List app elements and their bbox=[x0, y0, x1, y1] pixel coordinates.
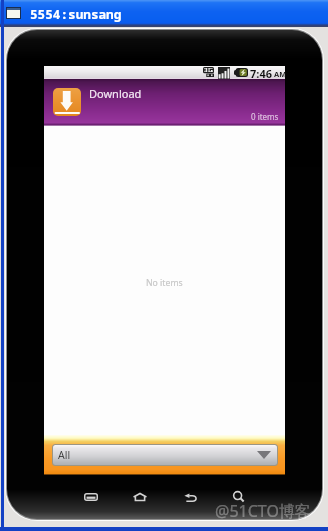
button[interactable]: All bbox=[53, 445, 277, 465]
staticText: 5554:sunsang bbox=[30, 5, 122, 22]
staticText: 7:46 bbox=[250, 66, 272, 79]
staticText: Download bbox=[89, 86, 142, 101]
staticText: 0 items bbox=[251, 111, 279, 122]
staticText: All bbox=[58, 448, 71, 462]
staticText: AM bbox=[274, 69, 287, 79]
button[interactable]: Back bbox=[174, 483, 207, 511]
button[interactable]: Search bbox=[223, 483, 254, 511]
button[interactable]: Menu bbox=[74, 483, 108, 511]
staticText: @51CTO博客 bbox=[215, 500, 311, 522]
button[interactable]: Home bbox=[123, 483, 157, 511]
staticText: No items bbox=[146, 277, 183, 289]
